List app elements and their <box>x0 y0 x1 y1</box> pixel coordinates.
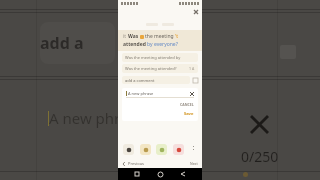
button[interactable]: CANCEL <box>126 102 194 107</box>
button[interactable]: Was the meeting attended? <box>122 64 198 73</box>
button[interactable]: Record <box>173 144 184 155</box>
staticText: CANCEL <box>180 102 194 107</box>
button[interactable]: Emoji <box>156 144 167 155</box>
staticText: add a comm <box>40 32 115 54</box>
staticText: Was the meeting attended? <box>125 66 177 71</box>
staticText: Was the meeting attended by everyone? <box>125 55 195 60</box>
staticText: 1 A <box>189 66 195 71</box>
staticText: by <box>147 41 153 48</box>
staticText: the meeting <box>145 33 174 40</box>
staticText: everyone? <box>154 41 178 48</box>
button[interactable]: Recents <box>133 170 141 178</box>
button[interactable]: Back <box>179 170 187 178</box>
staticText: 't <box>175 33 178 40</box>
staticText: Next <box>190 161 198 166</box>
staticText: Previous <box>128 161 145 166</box>
button[interactable]: add a comment <box>122 75 198 85</box>
button[interactable]: add a comm <box>40 22 115 64</box>
staticText: A new phr <box>49 108 121 128</box>
staticText: 0/250 <box>241 147 279 166</box>
staticText: attended <box>123 41 146 48</box>
staticText: A new phrase <box>128 91 189 96</box>
button[interactable]: Previous <box>122 161 145 166</box>
staticText: Was <box>128 33 139 40</box>
button[interactable]: More options <box>189 145 197 153</box>
button[interactable]: Clear <box>189 91 194 96</box>
staticText: it <box>123 33 128 40</box>
button[interactable]: Close <box>245 110 273 138</box>
button[interactable]: Close <box>192 8 199 15</box>
button[interactable]: Keyboard <box>123 144 134 155</box>
button[interactable]: Sticker <box>140 144 151 155</box>
button[interactable]: Save <box>126 111 194 116</box>
button[interactable]: Home <box>156 170 164 178</box>
staticText: add a comment <box>125 78 155 83</box>
staticText: Save <box>184 111 194 116</box>
button[interactable]: Was the meeting attended by everyone? <box>122 53 198 62</box>
